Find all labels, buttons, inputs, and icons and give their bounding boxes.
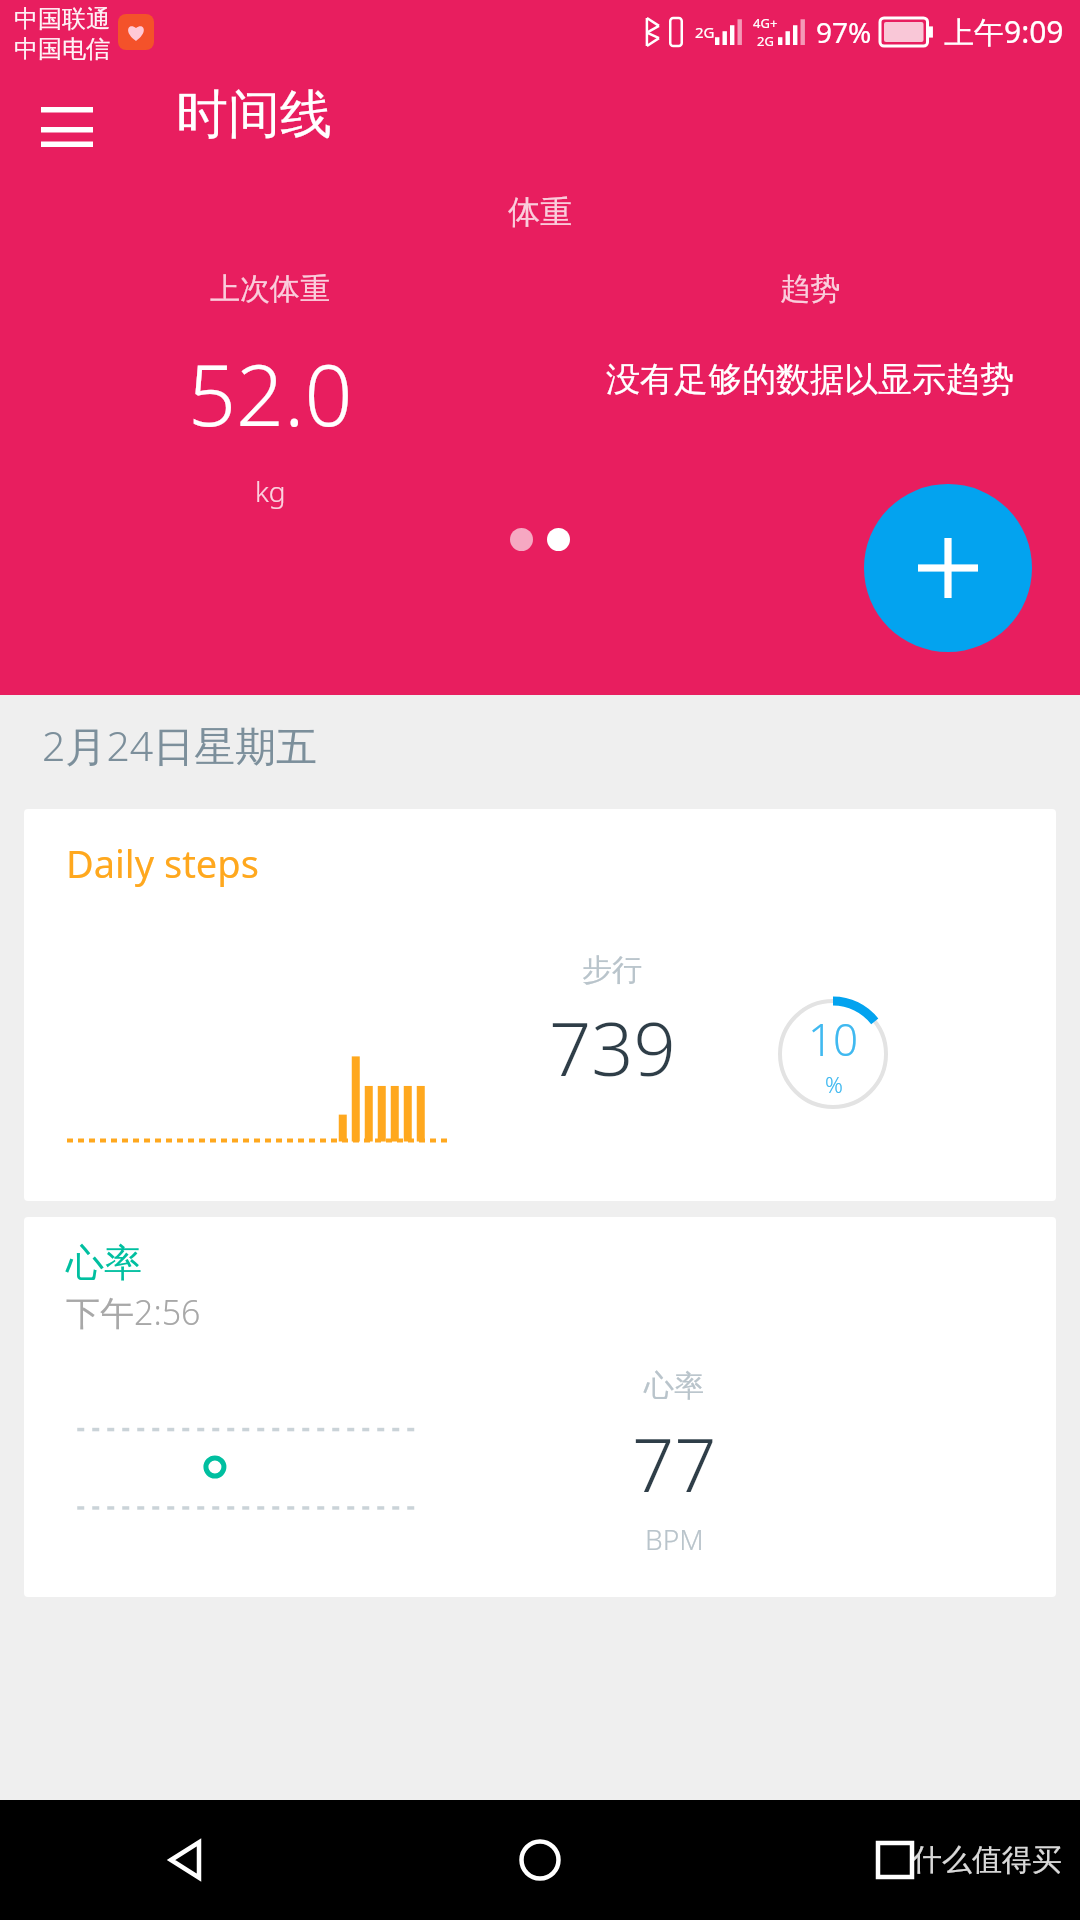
staticText: % <box>825 1069 843 1099</box>
staticText: 2月24日星期五 <box>42 717 318 773</box>
staticText: 什么值得买 <box>912 1841 1062 1879</box>
staticText: 心率 <box>66 1239 142 1287</box>
staticText: 2G <box>757 32 774 50</box>
staticText: 中国电信 <box>14 34 110 62</box>
staticText: 中国联通 <box>14 4 110 34</box>
staticText: 52.0 <box>188 336 353 450</box>
staticText: BPM <box>645 1520 704 1558</box>
staticText: 97% <box>816 13 872 51</box>
staticText: 体重 <box>0 192 1080 232</box>
staticText: Daily steps <box>66 837 259 889</box>
staticText: 上午9:09 <box>944 11 1064 52</box>
button[interactable]: Daily steps <box>24 809 1056 1201</box>
staticText: 2G <box>695 22 715 42</box>
button[interactable]: Home <box>495 1815 585 1905</box>
staticText: 心率 <box>644 1367 704 1405</box>
button[interactable]: Recent apps <box>850 1815 940 1905</box>
button[interactable]: 心率 <box>24 1217 1056 1597</box>
staticText: 10 <box>808 1009 859 1069</box>
staticText: 77 <box>632 1413 717 1514</box>
staticText: 趋势 <box>780 270 840 308</box>
staticText: 没有足够的数据以显示趋势 <box>606 358 1014 401</box>
staticText: 步行 <box>582 951 642 989</box>
button[interactable]: Back <box>140 1815 230 1905</box>
staticText: 时间线 <box>176 82 332 148</box>
staticText: 上次体重 <box>210 270 330 308</box>
staticText: 4G+ <box>753 14 778 32</box>
staticText: kg <box>255 472 286 510</box>
staticText: 下午2:56 <box>66 1289 201 1335</box>
button[interactable]: Open navigation menu <box>30 90 104 164</box>
button[interactable]: Add entry <box>864 484 1032 652</box>
staticText: 739 <box>549 997 676 1098</box>
